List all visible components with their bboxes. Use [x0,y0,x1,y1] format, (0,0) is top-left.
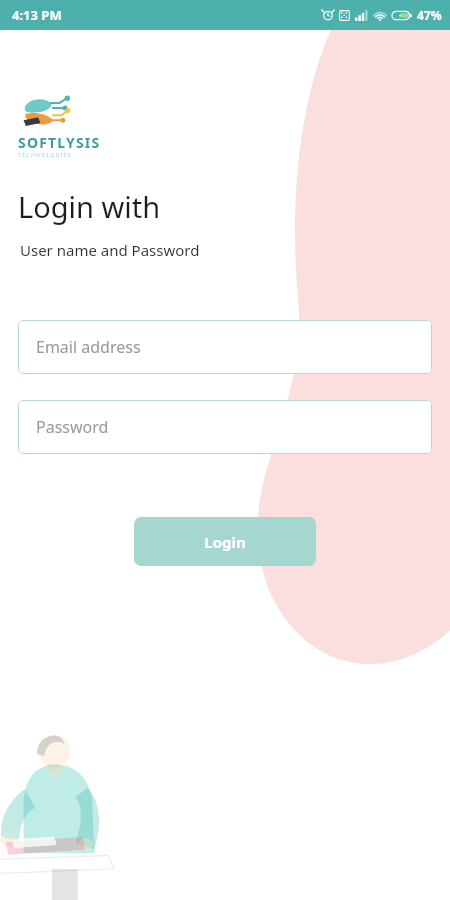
staticText: Login with [18,187,161,226]
staticText: SOFTLYSIS [18,133,101,152]
staticText: 47% [417,7,442,23]
button[interactable]: Login [134,517,316,566]
staticText: User name and Password [20,240,200,260]
staticText: Password [36,416,109,438]
button[interactable]: SOFTLYSIS [18,95,101,159]
staticText: TECHNOLOGIES [18,152,73,159]
staticText: Email address [36,336,141,358]
button[interactable]: Email address [18,320,432,374]
button[interactable]: Password [18,400,432,454]
staticText: Login [204,532,246,552]
staticText: 4:13 PM [12,6,62,24]
